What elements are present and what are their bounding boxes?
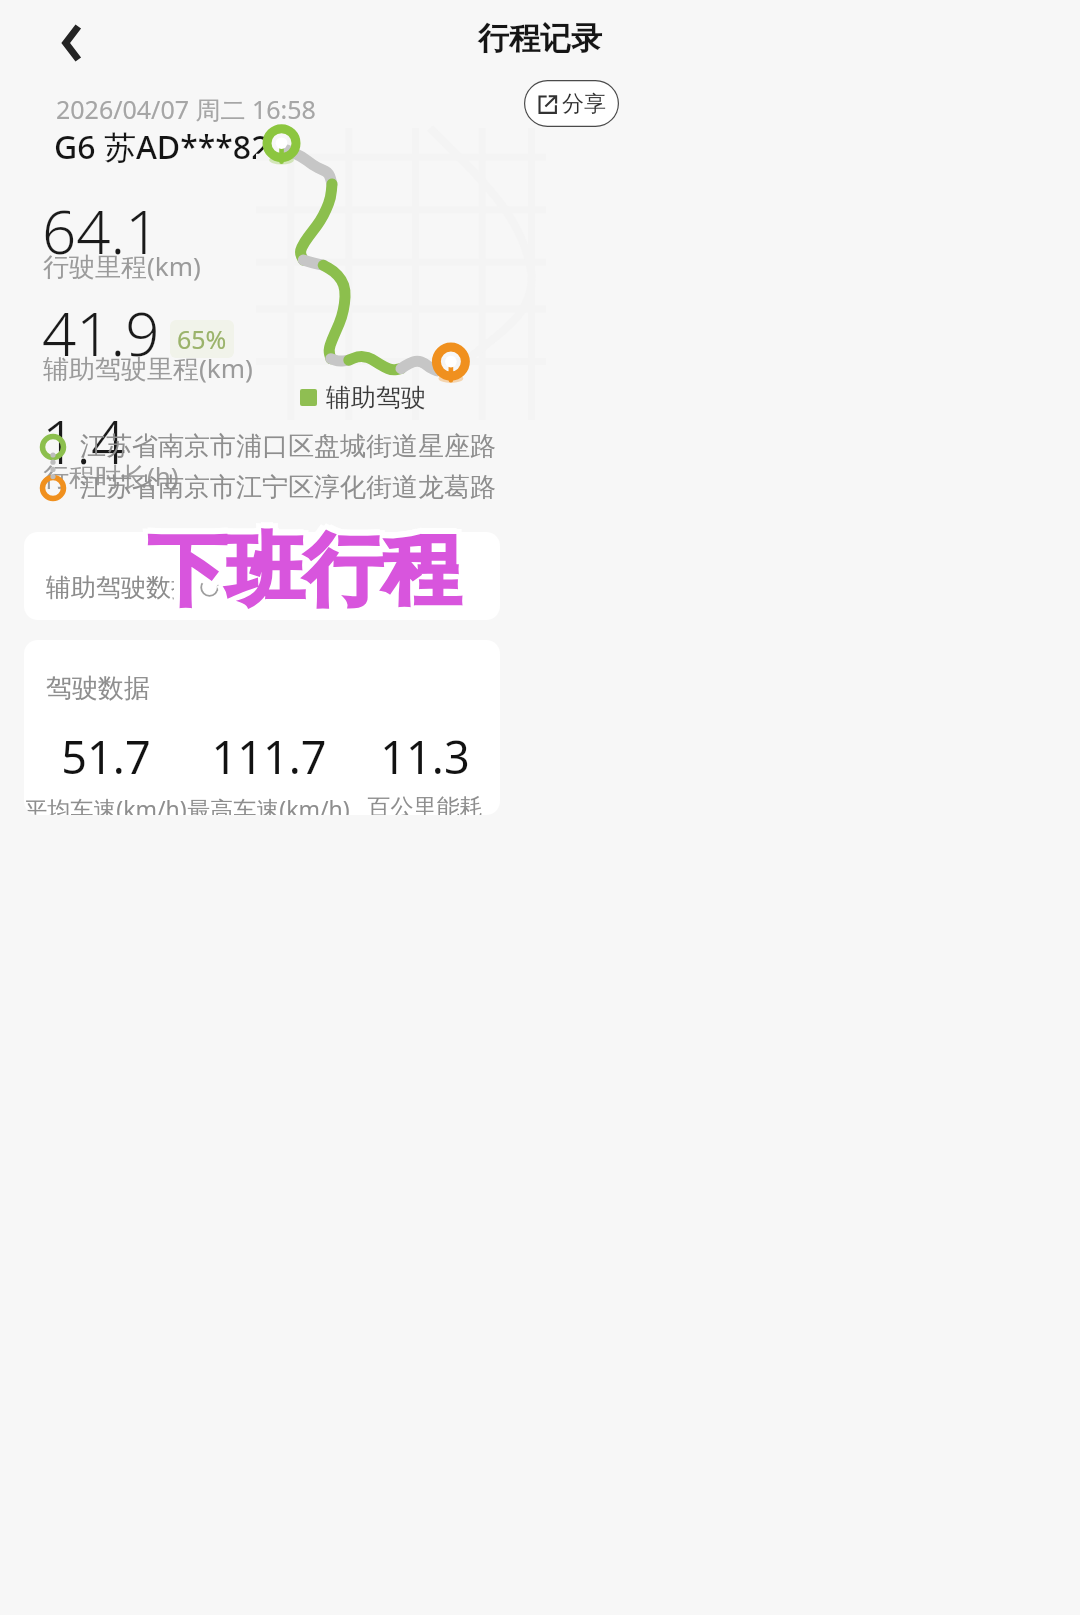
staticText: 平均车速(km/h) — [24, 793, 187, 815]
staticText: 辅助驾驶 — [326, 382, 426, 413]
staticText: 下班行程 — [148, 528, 460, 626]
staticText: 辅助驾驶数据 — [46, 572, 196, 603]
staticText: 65% — [177, 322, 227, 356]
staticText: 最高车速(km/h) — [187, 793, 350, 815]
staticText: G6 苏AD***82 — [54, 125, 270, 169]
button[interactable]: Back — [40, 10, 106, 76]
staticText: 下班行程 — [153, 527, 465, 625]
staticText: 行驶里程(km) — [43, 248, 201, 284]
staticText: 1.4 — [42, 400, 126, 482]
staticText: 下班行程 — [143, 527, 455, 625]
staticText: 江苏省南京市江宁区淳化街道龙葛路 — [80, 471, 496, 504]
staticText: 11.3 — [380, 726, 470, 787]
button[interactable]: 分享 — [524, 80, 619, 127]
staticText: 江苏省南京市浦口区盘城街道星座路 — [80, 430, 496, 463]
staticText: 驾驶数据 — [46, 672, 150, 705]
staticText: 下班行程 — [148, 516, 460, 614]
staticText: 111.7 — [211, 726, 327, 787]
staticText: 下班行程 — [142, 522, 454, 620]
staticText: 行程记录 — [478, 19, 602, 58]
staticText: 百公里能耗(kWh) — [350, 793, 500, 815]
staticText: 分享 — [562, 90, 606, 118]
staticText: 下班行程 — [148, 522, 460, 620]
staticText: 下班行程 — [143, 517, 455, 615]
staticText: 51.7 — [61, 726, 151, 787]
staticText: 64.1 — [42, 190, 160, 272]
staticText: 2026/04/07 周二 16:58 — [56, 92, 316, 126]
button[interactable]: 驾驶数据 — [24, 640, 500, 815]
button[interactable]: 辅助驾驶数据 — [24, 532, 500, 620]
staticText: 行程时长(h) — [43, 458, 179, 494]
staticText: 下班行程 — [153, 517, 465, 615]
staticText: 下班行程 — [154, 522, 466, 620]
staticText: 41.9 — [42, 292, 160, 374]
staticText: 辅助驾驶里程(km) — [43, 350, 253, 386]
